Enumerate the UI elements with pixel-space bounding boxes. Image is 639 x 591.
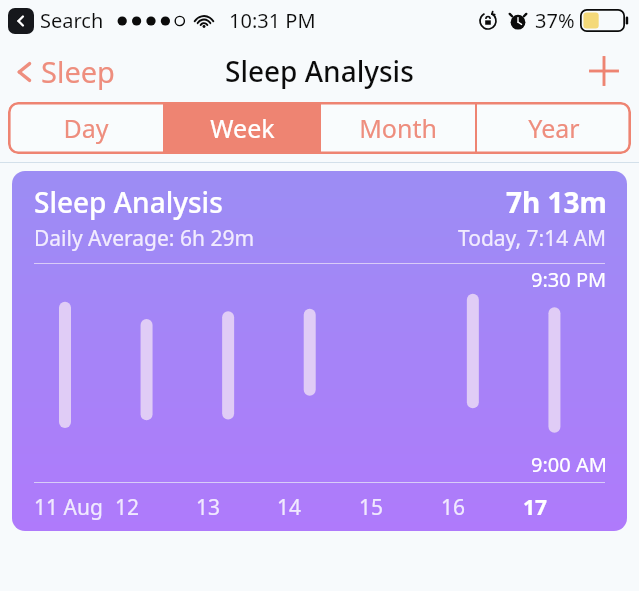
staticText: Day	[63, 111, 109, 145]
button[interactable]: Sleep Analysis	[12, 171, 627, 531]
staticText: 17	[523, 493, 548, 522]
staticText: Sleep Analysis	[34, 183, 223, 221]
staticText: 9:00 AM	[531, 451, 607, 478]
staticText: Sleep	[41, 52, 115, 91]
staticText: Month	[359, 111, 437, 145]
staticText: Week	[210, 111, 275, 145]
staticText: 13	[196, 493, 221, 522]
staticText: Sleep Analysis	[225, 52, 414, 90]
staticText: 10:31 PM	[229, 7, 316, 34]
button[interactable]: Sleep	[14, 52, 115, 91]
staticText: 16	[441, 493, 466, 522]
staticText: 15	[359, 493, 384, 522]
button[interactable]: Back to Search	[8, 8, 34, 34]
button[interactable]: Add data	[583, 50, 625, 92]
button[interactable]: Month	[321, 102, 475, 154]
staticText: 37%	[535, 7, 575, 34]
staticText: Year	[528, 111, 580, 145]
staticText: Daily Average: 6h 29m	[34, 224, 255, 253]
staticText: Search	[40, 7, 104, 34]
button[interactable]: Week	[165, 102, 319, 154]
staticText: 11 Aug	[34, 493, 103, 522]
staticText: 7h 13m	[506, 183, 607, 221]
staticText: Today, 7:14 AM	[458, 224, 607, 253]
button[interactable]: Year	[477, 102, 631, 154]
staticText: 12	[115, 493, 140, 522]
staticText: 14	[277, 493, 302, 522]
button[interactable]: Day	[8, 102, 163, 154]
staticText: 9:30 PM	[531, 266, 607, 293]
